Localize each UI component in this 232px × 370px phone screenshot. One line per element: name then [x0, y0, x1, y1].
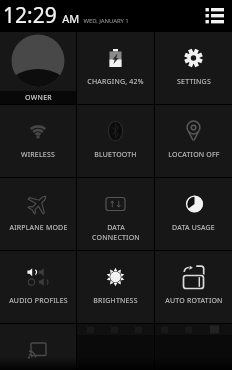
button[interactable]	[0, 324, 76, 370]
staticText: WIRELESS	[21, 150, 55, 160]
button[interactable]: DATA USAGE	[155, 178, 232, 250]
button[interactable]: AIRPLANE MODE	[0, 178, 76, 250]
staticText: AIRPLANE MODE	[9, 223, 68, 233]
button[interactable]: AUDIO PROFILES	[0, 251, 76, 323]
button[interactable]: BLUETOOTH	[77, 105, 154, 177]
staticText: BRIGHTNESS	[93, 296, 138, 306]
staticText: AUTO ROTATION	[165, 296, 223, 306]
button[interactable]	[204, 5, 226, 27]
staticText: 12:29 AM WED, JANUARY 1	[3, 1, 129, 30]
button[interactable]: LOCATION OFF	[155, 105, 232, 177]
button[interactable]: BRIGHTNESS	[77, 251, 154, 323]
staticText: LOCATION OFF	[168, 150, 220, 160]
staticText: DATA CONNECTION	[92, 223, 140, 243]
button[interactable]: WIRELESS	[0, 105, 76, 177]
button[interactable]: AUTO ROTATION	[155, 251, 232, 323]
button[interactable]: OWNER	[0, 32, 76, 104]
staticText: AUDIO PROFILES	[9, 296, 68, 306]
staticText: OWNER	[25, 93, 52, 103]
staticText: BLUETOOTH	[94, 150, 137, 160]
staticText: DATA USAGE	[172, 223, 215, 233]
staticText: SETTINGS	[177, 77, 211, 87]
button[interactable]: DATA CONNECTION	[77, 178, 154, 250]
staticText: CHARGING, 42%	[87, 77, 144, 87]
button[interactable]: SETTINGS	[155, 32, 232, 104]
button[interactable]: CHARGING, 42%	[77, 32, 154, 104]
